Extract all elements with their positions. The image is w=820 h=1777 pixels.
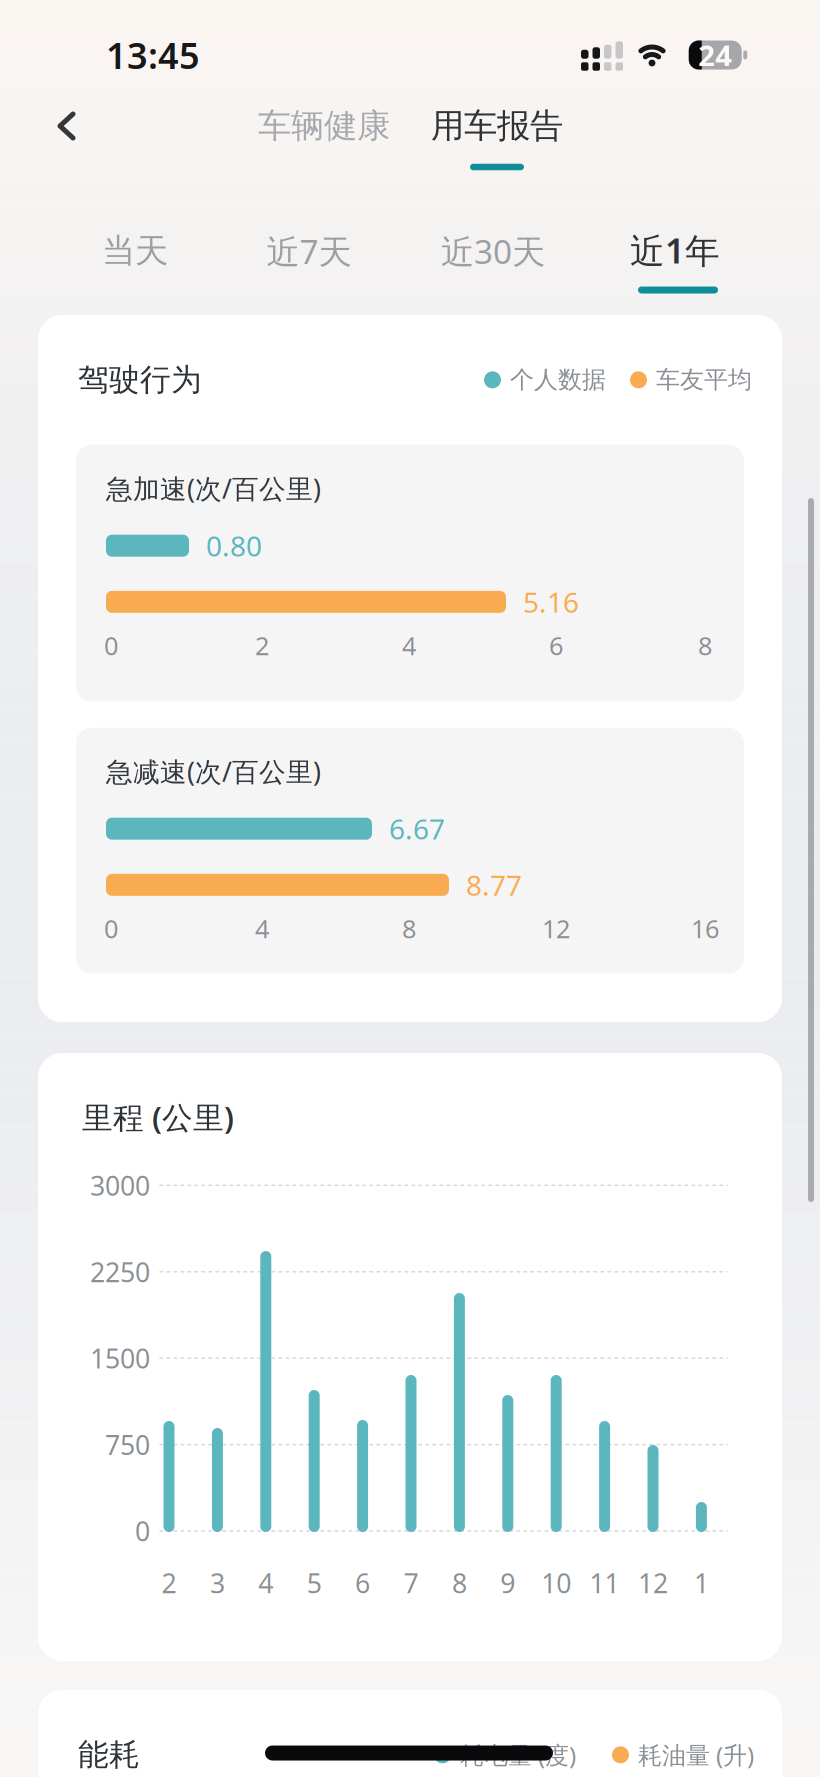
staticText: 车辆健康 xyxy=(258,105,390,146)
staticText: 耗电量 (度) xyxy=(460,1739,576,1771)
staticText: 4 xyxy=(258,1565,273,1601)
button[interactable]: 近30天 xyxy=(441,229,545,273)
staticText: 1 xyxy=(694,1565,709,1601)
staticText: 1500 xyxy=(90,1340,150,1376)
staticText: 驾驶行为 xyxy=(78,361,202,399)
staticText: 0.80 xyxy=(206,527,262,564)
staticText: 2 xyxy=(255,629,269,662)
staticText: 8 xyxy=(698,629,712,662)
staticText: 12 xyxy=(542,912,570,945)
staticText: 0 xyxy=(135,1513,150,1549)
staticText: 3 xyxy=(210,1565,225,1601)
staticText: 13:45 xyxy=(106,31,200,79)
staticText: 4 xyxy=(402,629,416,662)
staticText: 8 xyxy=(452,1565,467,1601)
staticText: 0 xyxy=(104,912,118,945)
staticText: 7 xyxy=(403,1565,418,1601)
staticText: 用车报告 xyxy=(431,105,563,146)
staticText: 能耗 xyxy=(78,1736,140,1774)
staticText: 2 xyxy=(161,1565,176,1601)
staticText: 个人数据 xyxy=(510,365,606,395)
staticText: 近30天 xyxy=(441,229,545,273)
staticText: 750 xyxy=(105,1427,150,1462)
staticText: 耗油量 (升) xyxy=(638,1739,754,1771)
staticText: 车友平均 xyxy=(656,365,752,395)
staticText: 2250 xyxy=(90,1254,150,1289)
button[interactable]: 近7天 xyxy=(266,229,351,273)
staticText: 近1年 xyxy=(630,227,720,273)
button[interactable]: 当天 xyxy=(102,230,168,271)
staticText: 6 xyxy=(549,629,563,662)
staticText: 0 xyxy=(104,629,118,662)
staticText: 当天 xyxy=(102,230,168,271)
button[interactable]: 用车报告 xyxy=(431,105,563,146)
staticText: 急减速(次/百公里) xyxy=(106,754,321,789)
staticText: 8 xyxy=(402,912,416,945)
staticText: 6 xyxy=(355,1565,370,1601)
staticText: 12 xyxy=(638,1565,668,1601)
staticText: 11 xyxy=(590,1565,620,1601)
staticText: 16 xyxy=(691,912,719,945)
staticText: 24 xyxy=(698,35,732,74)
staticText: 4 xyxy=(255,912,269,945)
button[interactable]: Back xyxy=(45,104,89,148)
staticText: 6.67 xyxy=(389,810,445,847)
button[interactable]: 近1年 xyxy=(630,227,720,273)
staticText: 5.16 xyxy=(523,583,579,620)
staticText: 3000 xyxy=(90,1168,150,1203)
staticText: 10 xyxy=(541,1565,571,1601)
staticText: 9 xyxy=(500,1565,515,1601)
staticText: 8.77 xyxy=(466,866,522,903)
staticText: 5 xyxy=(307,1565,322,1601)
staticText: 急加速(次/百公里) xyxy=(106,471,321,506)
button[interactable]: 车辆健康 xyxy=(258,105,390,146)
staticText: 里程 (公里) xyxy=(82,1097,234,1137)
staticText: 近7天 xyxy=(266,229,351,273)
